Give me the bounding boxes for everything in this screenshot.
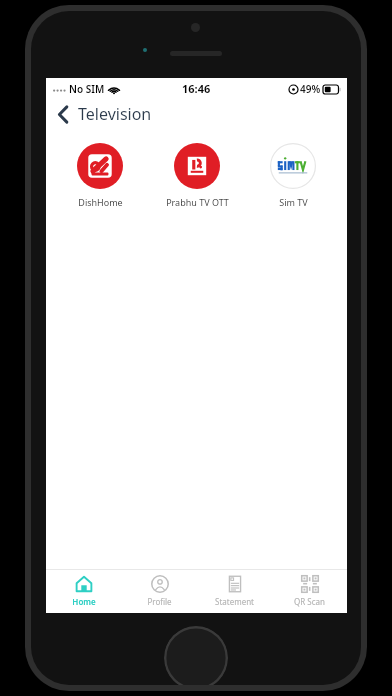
button[interactable]: Prabhu TV OTT	[155, 141, 239, 210]
button[interactable]: DishHome	[58, 141, 142, 210]
staticText: Prabhu TV OTT	[166, 196, 229, 208]
staticText: Home	[72, 596, 96, 607]
button[interactable]: Statement	[197, 570, 272, 613]
staticText: Television	[78, 103, 152, 125]
other: Back	[57, 105, 69, 124]
staticText: Sim TV	[279, 196, 308, 208]
staticText: No SIM	[69, 82, 105, 96]
staticText: Profile	[147, 596, 172, 607]
staticText: 16:46	[182, 81, 211, 96]
staticText: 49%	[300, 82, 321, 96]
button[interactable]: Home	[46, 570, 122, 613]
button[interactable]: QR Scan	[272, 570, 347, 613]
staticText: DishHome	[78, 196, 123, 208]
button[interactable]: Back	[55, 100, 154, 128]
staticText: Statement	[215, 596, 254, 607]
button[interactable]: Sim TV	[251, 141, 335, 210]
button[interactable]: Profile	[122, 570, 197, 613]
staticText: QR Scan	[294, 596, 325, 607]
